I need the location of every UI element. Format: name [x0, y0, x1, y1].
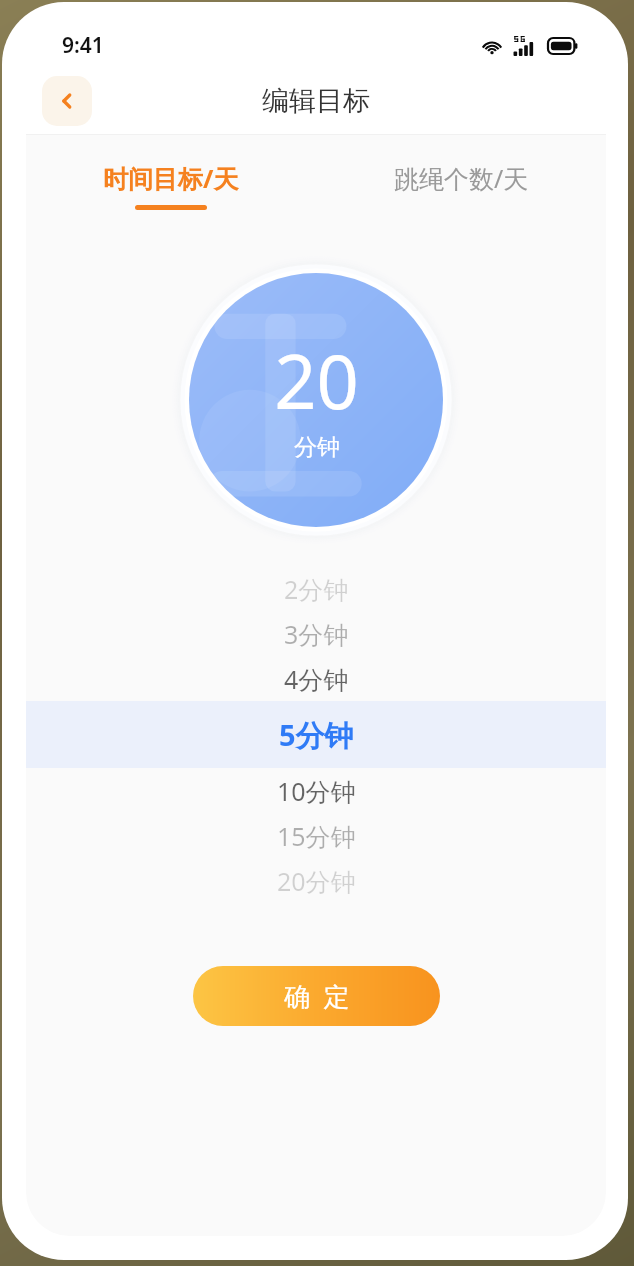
button[interactable]: 4分钟 [26, 656, 606, 701]
button[interactable]: 5分钟 [26, 701, 606, 768]
button[interactable]: Back [42, 76, 92, 126]
staticText: 确 定 [284, 978, 350, 1014]
button[interactable]: 3分钟 [26, 611, 606, 656]
staticText: 5分钟 [279, 715, 354, 755]
button[interactable]: 20分钟 [26, 858, 606, 903]
staticText: 4分钟 [284, 662, 349, 696]
button[interactable]: 跳绳个数/天 [316, 161, 606, 210]
button[interactable]: 10分钟 [26, 768, 606, 813]
staticText: 编辑目标 [262, 84, 370, 118]
button[interactable]: 15分钟 [26, 813, 606, 858]
staticText: 跳绳个数/天 [394, 161, 529, 195]
staticText: 9:41 [62, 31, 104, 60]
button[interactable]: 确 定 [193, 966, 440, 1026]
staticText: 2分钟 [284, 572, 349, 606]
staticText: 15分钟 [277, 819, 356, 853]
button[interactable]: 2分钟 [26, 566, 606, 611]
staticText: 20分钟 [277, 864, 356, 898]
button[interactable]: 时间目标/天 [26, 161, 316, 210]
staticText: 10分钟 [277, 774, 356, 808]
staticText: 20 [274, 330, 359, 431]
button[interactable]: 20 [189, 273, 443, 527]
staticText: 3分钟 [284, 617, 349, 651]
staticText: 时间目标/天 [103, 161, 239, 195]
staticText: 分钟 [294, 433, 340, 462]
